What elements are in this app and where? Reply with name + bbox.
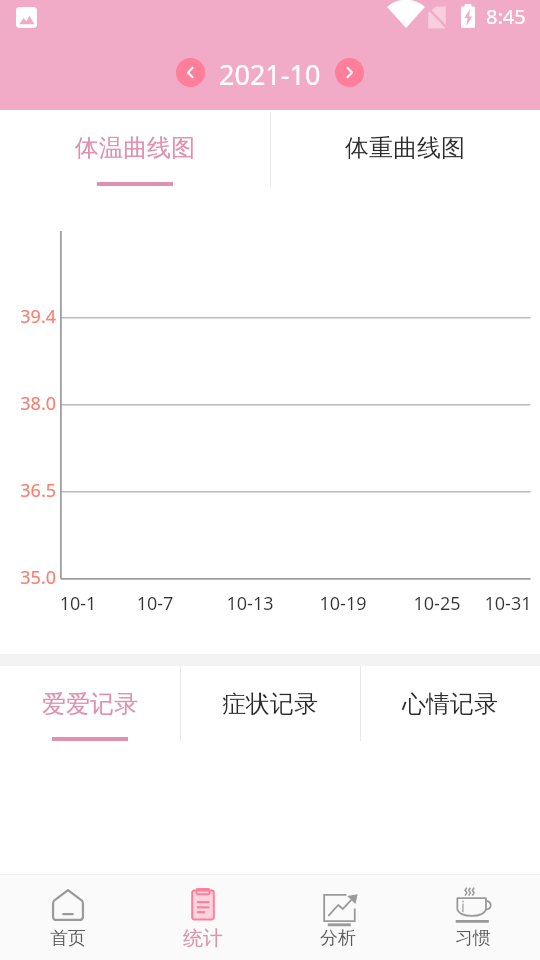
staticText: 10-31 <box>468 591 540 616</box>
button[interactable]: 统计 <box>135 875 270 960</box>
staticText: 10-13 <box>210 591 290 616</box>
button[interactable]: 体温曲线图 <box>0 110 270 186</box>
staticText: 分析 <box>320 927 356 950</box>
staticText: 爱爱记录 <box>42 689 138 719</box>
button[interactable]: 爱爱记录 <box>0 666 180 741</box>
staticText: 35.0 <box>0 565 56 590</box>
button[interactable]: 首页 <box>0 875 135 960</box>
button[interactable]: Previous month <box>176 58 205 87</box>
staticText: 10-7 <box>115 591 195 616</box>
button[interactable]: 分析 <box>270 875 405 960</box>
staticText: 体重曲线图 <box>345 133 465 163</box>
button[interactable]: 习惯 <box>405 875 540 960</box>
button[interactable]: 心情记录 <box>360 666 540 741</box>
button[interactable]: 体重曲线图 <box>270 110 540 186</box>
button[interactable]: Next month <box>335 58 364 87</box>
staticText: 体温曲线图 <box>75 133 195 163</box>
staticText: 10-1 <box>38 591 118 616</box>
staticText: 39.4 <box>0 304 56 329</box>
staticText: 习惯 <box>455 927 491 950</box>
staticText: 10-25 <box>397 591 477 616</box>
staticText: 症状记录 <box>222 689 318 719</box>
staticText: 36.5 <box>0 478 56 503</box>
staticText: 心情记录 <box>402 689 498 719</box>
staticText: 38.0 <box>0 391 56 416</box>
button[interactable]: 症状记录 <box>180 666 360 741</box>
staticText: 8:45 <box>486 3 526 29</box>
staticText: 首页 <box>50 927 86 950</box>
staticText: 统计 <box>183 926 223 950</box>
staticText: 2021-10 <box>219 56 321 90</box>
staticText: 10-19 <box>303 591 383 616</box>
